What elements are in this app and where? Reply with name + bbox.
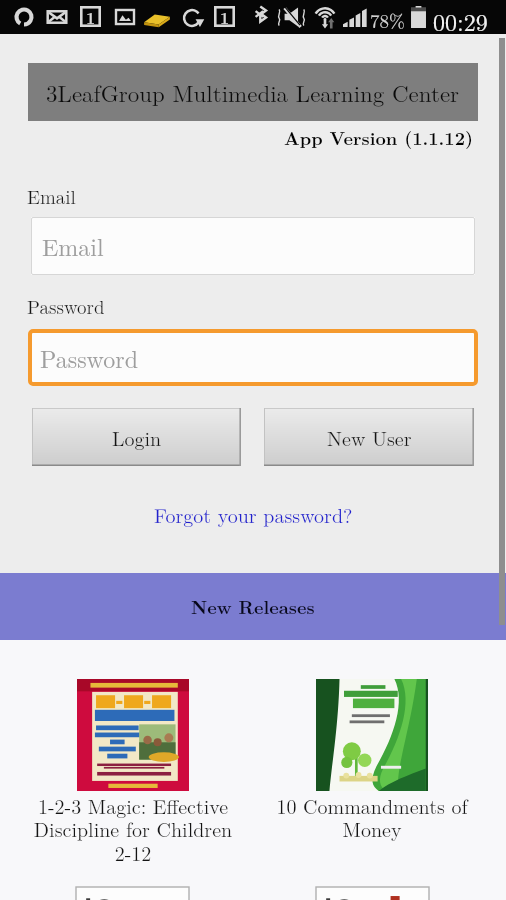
button[interactable]: Login [32,408,241,466]
button[interactable]: Password [28,329,478,386]
button[interactable] [316,679,428,791]
staticText: 3LeafGroup Multimedia Learning Center [46,76,460,109]
staticText: 1 [220,6,230,27]
staticText: Email [27,183,76,210]
staticText: 1-2-3 Magic: Effective Discipline for Ch… [31,791,235,867]
button[interactable]: Email [31,217,475,275]
button[interactable]: New User [264,408,474,466]
button[interactable] [77,679,189,791]
staticText: New Releases [191,594,315,620]
staticText: New User [327,423,412,451]
button[interactable] [316,887,429,900]
button[interactable]: 10 Commandments of Money [270,791,474,843]
staticText: 10 Commandments of Money [270,791,474,843]
button[interactable] [76,887,189,900]
staticText: Password [40,341,138,375]
button[interactable]: Forgot your password? [148,497,359,531]
staticText: Email [42,229,104,263]
staticText: Password [27,293,105,320]
staticText: App Version (1.1.12) [284,125,474,151]
staticText: 1 [86,6,96,27]
staticText: 00:29 [433,4,488,38]
button[interactable]: 1-2-3 Magic: Effective Discipline for Ch… [31,791,235,867]
staticText: Login [112,423,162,451]
staticText: 78% [370,7,405,34]
